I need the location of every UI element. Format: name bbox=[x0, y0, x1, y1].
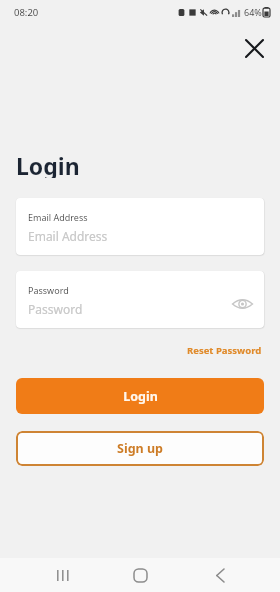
staticText: Password bbox=[28, 284, 69, 296]
button[interactable]: Email Address bbox=[16, 198, 264, 255]
button[interactable]: Password bbox=[16, 271, 264, 328]
staticText: Password bbox=[28, 301, 83, 317]
button[interactable]: Home bbox=[123, 558, 157, 592]
staticText: 08:20 bbox=[14, 6, 39, 19]
button[interactable]: Sign up bbox=[16, 431, 264, 466]
button[interactable]: Show password bbox=[227, 289, 257, 319]
button[interactable]: Login bbox=[16, 378, 264, 414]
button[interactable]: Close bbox=[236, 30, 272, 66]
button[interactable]: Back bbox=[203, 558, 237, 592]
staticText: Login bbox=[16, 150, 80, 178]
button[interactable]: Recent apps bbox=[45, 558, 79, 592]
staticText: Email Address bbox=[28, 228, 108, 244]
staticText: Email Address bbox=[28, 211, 88, 223]
staticText: Sign up bbox=[117, 440, 163, 457]
staticText: Reset Password bbox=[187, 344, 262, 357]
button[interactable]: Reset Password bbox=[185, 341, 264, 360]
staticText: 64% bbox=[244, 6, 262, 18]
staticText: Login bbox=[123, 388, 158, 405]
